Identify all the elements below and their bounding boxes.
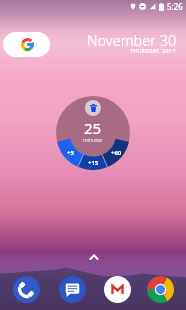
button[interactable]: Add +60 minutes [111,149,122,157]
staticText: 25 [84,118,102,138]
button[interactable]: Google search [3,32,50,57]
staticText: +5 [67,149,74,157]
staticText: November 30 [87,30,177,50]
button[interactable]: Messages [58,275,86,303]
button[interactable]: Delete timer [85,100,101,116]
button[interactable]: Gmail [103,275,131,303]
button[interactable]: Open app drawer [85,248,102,265]
staticText: THURSDAY, 2017 [130,48,176,55]
button[interactable]: Chrome [146,275,174,303]
button[interactable]: Add +5 minutes [67,149,74,157]
staticText: +15 [88,159,99,167]
button[interactable]: Add +15 minutes [88,159,99,167]
staticText: minutes [83,137,103,144]
staticText: +60 [111,149,122,157]
button[interactable]: Phone [12,275,40,303]
staticText: 5:26 [167,1,183,12]
